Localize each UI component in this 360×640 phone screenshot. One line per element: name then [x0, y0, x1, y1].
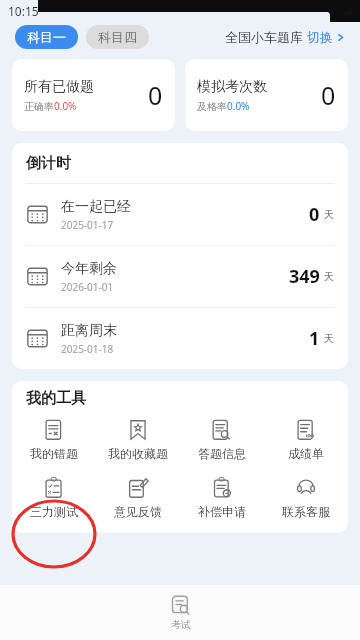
staticText: 切换	[307, 29, 333, 45]
button[interactable]: 答题信息	[180, 415, 264, 465]
staticText: 10:15	[8, 3, 39, 19]
button[interactable]: 联系客服	[264, 473, 348, 523]
staticText: 我的收藏题	[108, 446, 168, 461]
button[interactable]: 科目四	[86, 25, 149, 49]
staticText: 科目一	[27, 29, 66, 45]
staticText: 天	[324, 270, 334, 283]
staticText: 倒计时	[26, 154, 71, 173]
button[interactable]: 考试	[154, 591, 207, 635]
staticText: 2026-01-01	[61, 280, 114, 294]
staticText: 正确率0.0%	[24, 99, 77, 113]
staticText: 联系客服	[282, 504, 330, 519]
staticText: 2025-01-18	[61, 342, 114, 356]
button[interactable]: 补偿申请	[180, 473, 264, 523]
staticText: 科目四	[98, 29, 137, 45]
staticText: 在一起已经	[61, 198, 131, 216]
staticText: 我的工具	[26, 389, 86, 408]
button[interactable]: 在一起已经	[12, 184, 348, 245]
staticText: 天	[324, 208, 334, 221]
staticText: 补偿申请	[198, 504, 246, 519]
staticText: 全国小车题库	[225, 29, 303, 45]
button[interactable]: 距离周末	[12, 308, 348, 369]
staticText: 2025-01-17	[61, 218, 114, 232]
button[interactable]: 全国小车题库	[225, 29, 345, 45]
staticText: 0	[148, 78, 163, 112]
button[interactable]: 三力测试	[12, 473, 96, 523]
button[interactable]: 所有已做题	[12, 59, 175, 131]
staticText: 1	[309, 326, 320, 351]
staticText: 答题信息	[198, 446, 246, 461]
button[interactable]: 我的收藏题	[96, 415, 180, 465]
staticText: 距离周末	[61, 322, 117, 340]
button[interactable]: 意见反馈	[96, 473, 180, 523]
staticText: 所有已做题	[24, 78, 94, 96]
button[interactable]: 模拟考次数	[185, 59, 348, 131]
staticText: 0	[309, 202, 320, 227]
staticText: 天	[324, 332, 334, 345]
staticText: 模拟考次数	[197, 78, 267, 96]
staticText: 我的错题	[30, 446, 78, 461]
staticText: 成绩单	[288, 446, 324, 461]
staticText: 三力测试	[30, 504, 78, 519]
button[interactable]: 今年剩余	[12, 246, 348, 307]
staticText: 0	[321, 78, 336, 112]
staticText: 意见反馈	[114, 504, 162, 519]
staticText: 及格率0.0%	[197, 99, 250, 113]
button[interactable]: 我的错题	[12, 415, 96, 465]
staticText: 考试	[171, 618, 191, 631]
button[interactable]: 成绩单	[264, 415, 348, 465]
button[interactable]: 科目一	[15, 25, 78, 49]
staticText: 今年剩余	[61, 260, 117, 278]
staticText: 349	[289, 264, 320, 289]
